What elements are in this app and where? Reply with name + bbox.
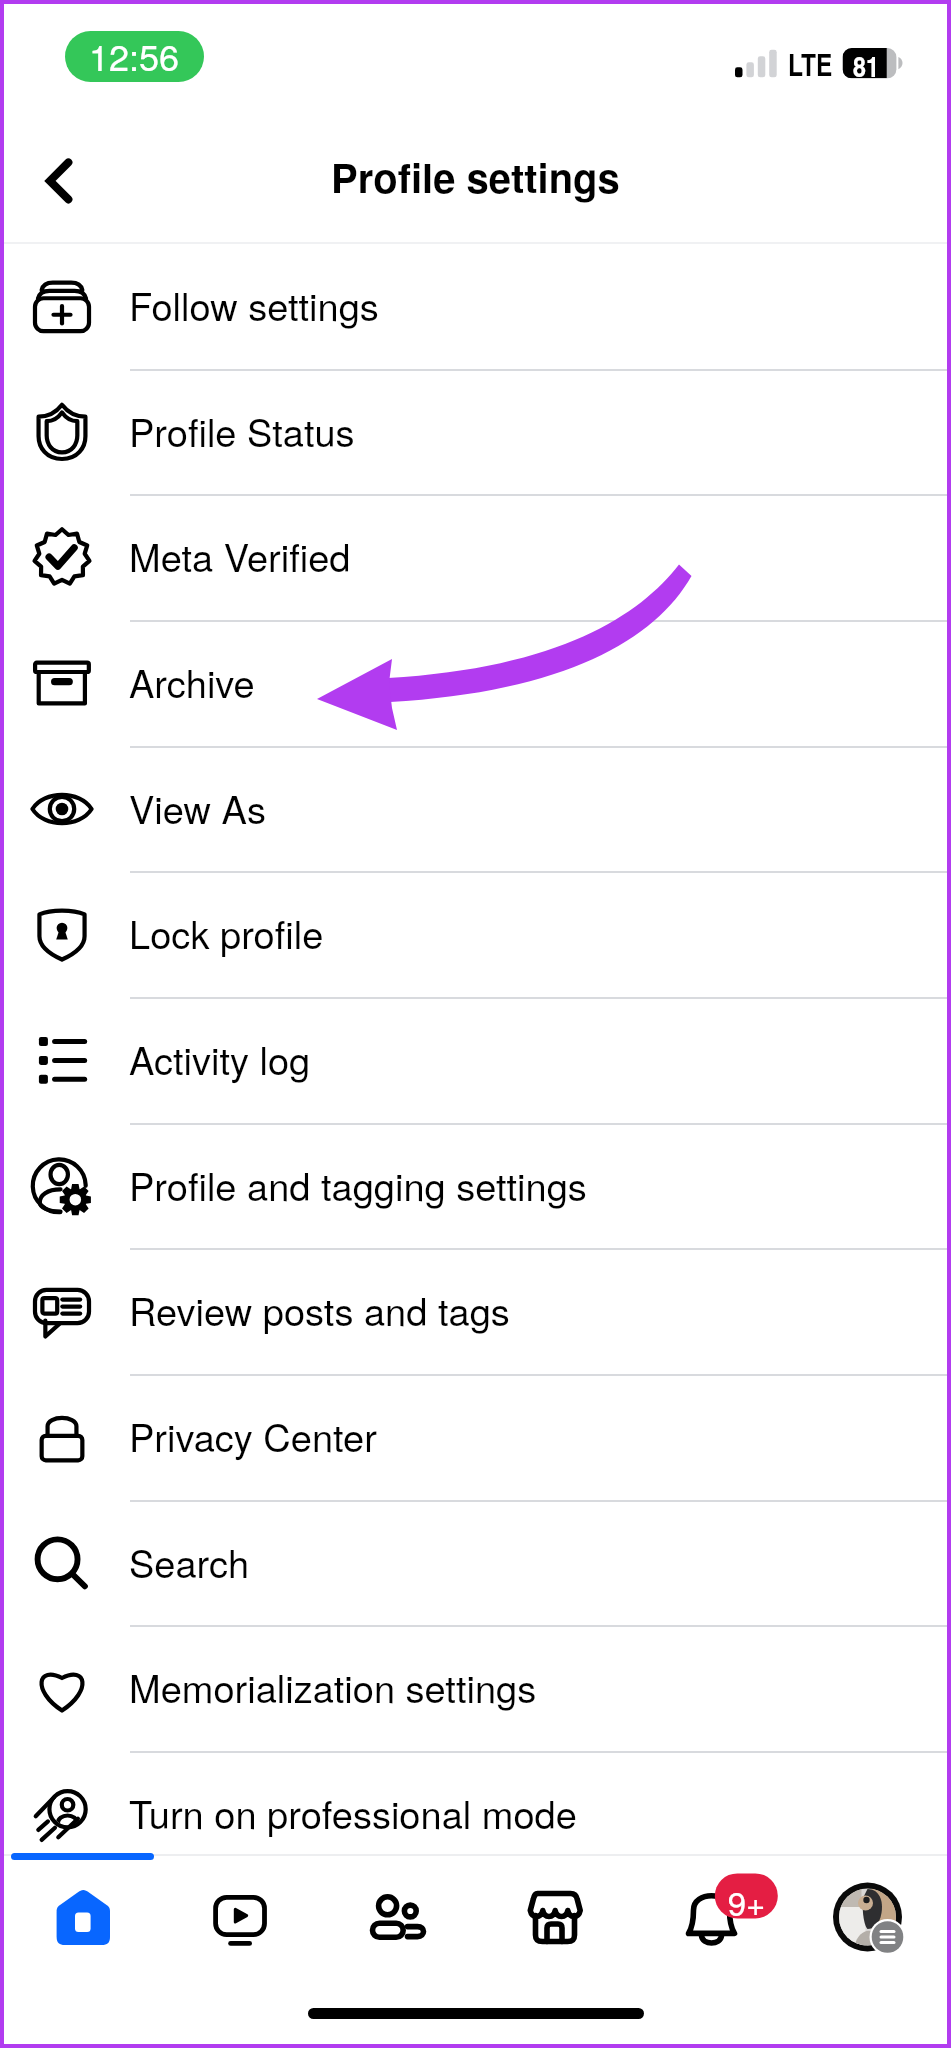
button[interactable]: Lock profile	[0, 871, 951, 997]
button[interactable]: View As	[0, 746, 951, 872]
staticText: LTE	[788, 43, 833, 85]
button[interactable]: Follow settings	[0, 243, 951, 369]
button[interactable]: Home	[5, 1861, 161, 1973]
staticText: Search	[129, 1534, 250, 1588]
staticText: Profile settings	[331, 148, 620, 205]
button[interactable]: Video	[162, 1861, 318, 1973]
staticText: Memorialization settings	[129, 1659, 537, 1713]
staticText: Turn on professional mode	[129, 1785, 577, 1839]
button[interactable]: Memorialization settings	[0, 1625, 951, 1751]
staticText: View As	[129, 780, 266, 834]
staticText: Profile Status	[129, 403, 355, 457]
button[interactable]: Search	[0, 1500, 951, 1626]
staticText: Review posts and tags	[129, 1282, 510, 1336]
button[interactable]: Activity log	[0, 997, 951, 1123]
button[interactable]: Notifications	[633, 1861, 789, 1973]
button[interactable]: Marketplace	[476, 1861, 632, 1973]
button[interactable]: Profile and tagging settings	[0, 1123, 951, 1249]
staticText: 9+	[715, 1878, 778, 1925]
button[interactable]: Review posts and tags	[0, 1248, 951, 1374]
button[interactable]: Friends	[319, 1861, 475, 1973]
staticText: Archive	[129, 654, 255, 708]
staticText: Meta Verified	[129, 528, 351, 582]
staticText: Activity log	[129, 1031, 311, 1085]
staticText: 12:56	[89, 31, 180, 81]
staticText: Follow settings	[129, 277, 379, 331]
button[interactable]: Meta Verified	[0, 494, 951, 620]
button[interactable]: Turn on professional mode	[0, 1751, 951, 1877]
staticText: 81	[845, 45, 887, 86]
button[interactable]: Profile Status	[0, 369, 951, 495]
staticText: Privacy Center	[129, 1408, 377, 1462]
staticText: Lock profile	[129, 905, 324, 959]
staticText: Profile and tagging settings	[129, 1157, 587, 1211]
button[interactable]: Back	[20, 140, 102, 222]
button[interactable]: Archive	[0, 620, 951, 746]
button[interactable]: Privacy Center	[0, 1374, 951, 1500]
button[interactable]: Menu	[790, 1861, 946, 1973]
